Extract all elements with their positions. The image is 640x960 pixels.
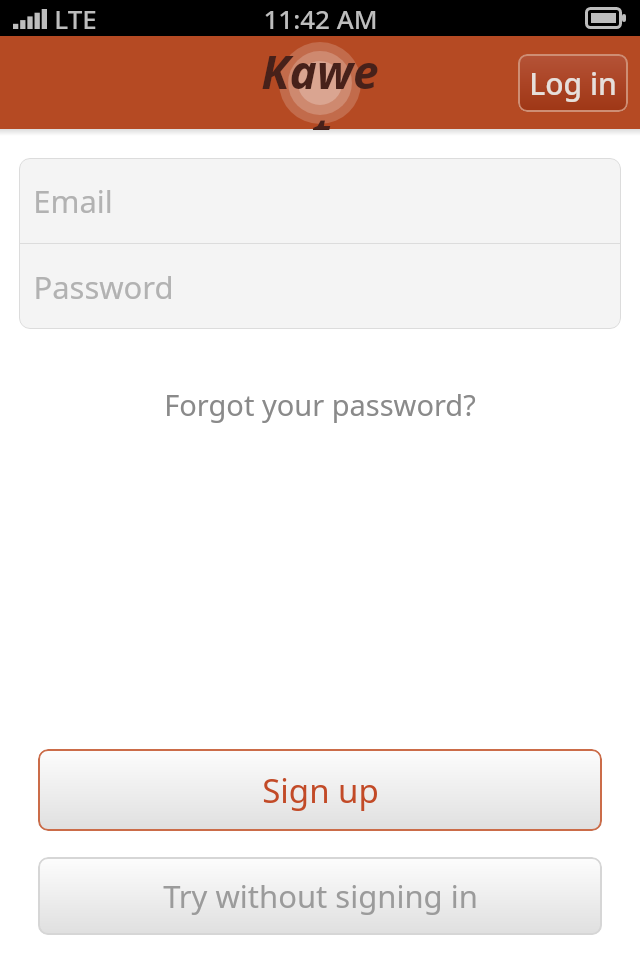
staticText: Log in — [529, 63, 617, 104]
button[interactable]: Email — [19, 158, 621, 243]
button[interactable]: Try without signing in — [38, 857, 602, 935]
staticText: Forgot your password? — [164, 385, 476, 424]
other: Battery — [585, 7, 627, 29]
staticText: Sign up — [262, 768, 379, 813]
button[interactable]: Sign up — [38, 749, 602, 831]
staticText: Try without signing in — [163, 875, 478, 917]
button[interactable]: Log in — [518, 54, 628, 112]
staticText: LTE — [54, 1, 97, 36]
button[interactable]: Password — [19, 244, 621, 329]
staticText: Password — [33, 266, 174, 308]
staticText: Kawet — [254, 40, 386, 130]
button[interactable]: Forgot your password? — [144, 377, 496, 432]
staticText: Email — [33, 180, 113, 222]
staticText: 11:42 AM — [263, 1, 378, 36]
